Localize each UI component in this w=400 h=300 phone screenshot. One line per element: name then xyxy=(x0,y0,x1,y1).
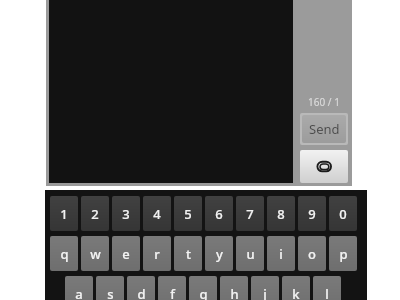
button[interactable]: j xyxy=(251,276,279,300)
button[interactable]: 5 xyxy=(174,196,202,231)
staticText: w xyxy=(90,245,101,263)
button[interactable]: 0 xyxy=(329,196,357,231)
button[interactable]: 1 xyxy=(50,196,78,231)
staticText: 3 xyxy=(122,205,130,223)
staticText: d xyxy=(137,285,146,300)
staticText: 8 xyxy=(277,205,285,223)
staticText: t xyxy=(186,245,191,263)
staticText: e xyxy=(122,245,130,263)
staticText: 5 xyxy=(184,205,192,223)
button[interactable]: 8 xyxy=(267,196,295,231)
button[interactable]: g xyxy=(189,276,217,300)
staticText: Send xyxy=(309,120,340,138)
staticText: 7 xyxy=(246,205,254,223)
button[interactable]: r xyxy=(143,236,171,271)
button[interactable]: l xyxy=(313,276,341,300)
staticText: r xyxy=(154,245,160,263)
button[interactable]: i xyxy=(267,236,295,271)
button[interactable]: o xyxy=(298,236,326,271)
staticText: 1 xyxy=(60,205,68,223)
staticText: a xyxy=(75,285,83,300)
staticText: i xyxy=(279,245,283,263)
staticText: o xyxy=(308,245,316,263)
button[interactable]: w xyxy=(81,236,109,271)
button[interactable]: Send xyxy=(300,113,348,145)
button[interactable]: u xyxy=(236,236,264,271)
staticText: f xyxy=(170,285,175,300)
button[interactable]: y xyxy=(205,236,233,271)
button[interactable] xyxy=(46,0,296,186)
button[interactable]: k xyxy=(282,276,310,300)
button[interactable]: 7 xyxy=(236,196,264,231)
staticText: 6 xyxy=(215,205,223,223)
button[interactable]: d xyxy=(127,276,155,300)
staticText: p xyxy=(339,245,348,263)
button[interactable]: 2 xyxy=(81,196,109,231)
staticText: k xyxy=(292,285,300,300)
button[interactable]: p xyxy=(329,236,357,271)
button[interactable]: 6 xyxy=(205,196,233,231)
staticText: s xyxy=(107,285,114,300)
staticText: q xyxy=(60,245,69,263)
staticText: l xyxy=(325,285,329,300)
staticText: y xyxy=(216,245,223,263)
staticText: j xyxy=(263,285,267,300)
staticText: 4 xyxy=(153,205,161,223)
button[interactable]: 4 xyxy=(143,196,171,231)
button[interactable]: 3 xyxy=(112,196,140,231)
button[interactable]: Attach xyxy=(300,150,348,183)
staticText: 0 xyxy=(339,205,347,223)
staticText: u xyxy=(246,245,255,263)
button[interactable]: f xyxy=(158,276,186,300)
staticText: 2 xyxy=(91,205,99,223)
button[interactable]: e xyxy=(112,236,140,271)
staticText: g xyxy=(199,285,208,300)
button[interactable]: 9 xyxy=(298,196,326,231)
staticText: 160 / 1 xyxy=(308,95,340,109)
button[interactable]: q xyxy=(50,236,78,271)
button[interactable]: t xyxy=(174,236,202,271)
staticText: h xyxy=(230,285,239,300)
button[interactable]: s xyxy=(96,276,124,300)
staticText: 9 xyxy=(308,205,316,223)
button[interactable]: h xyxy=(220,276,248,300)
button[interactable]: a xyxy=(65,276,93,300)
